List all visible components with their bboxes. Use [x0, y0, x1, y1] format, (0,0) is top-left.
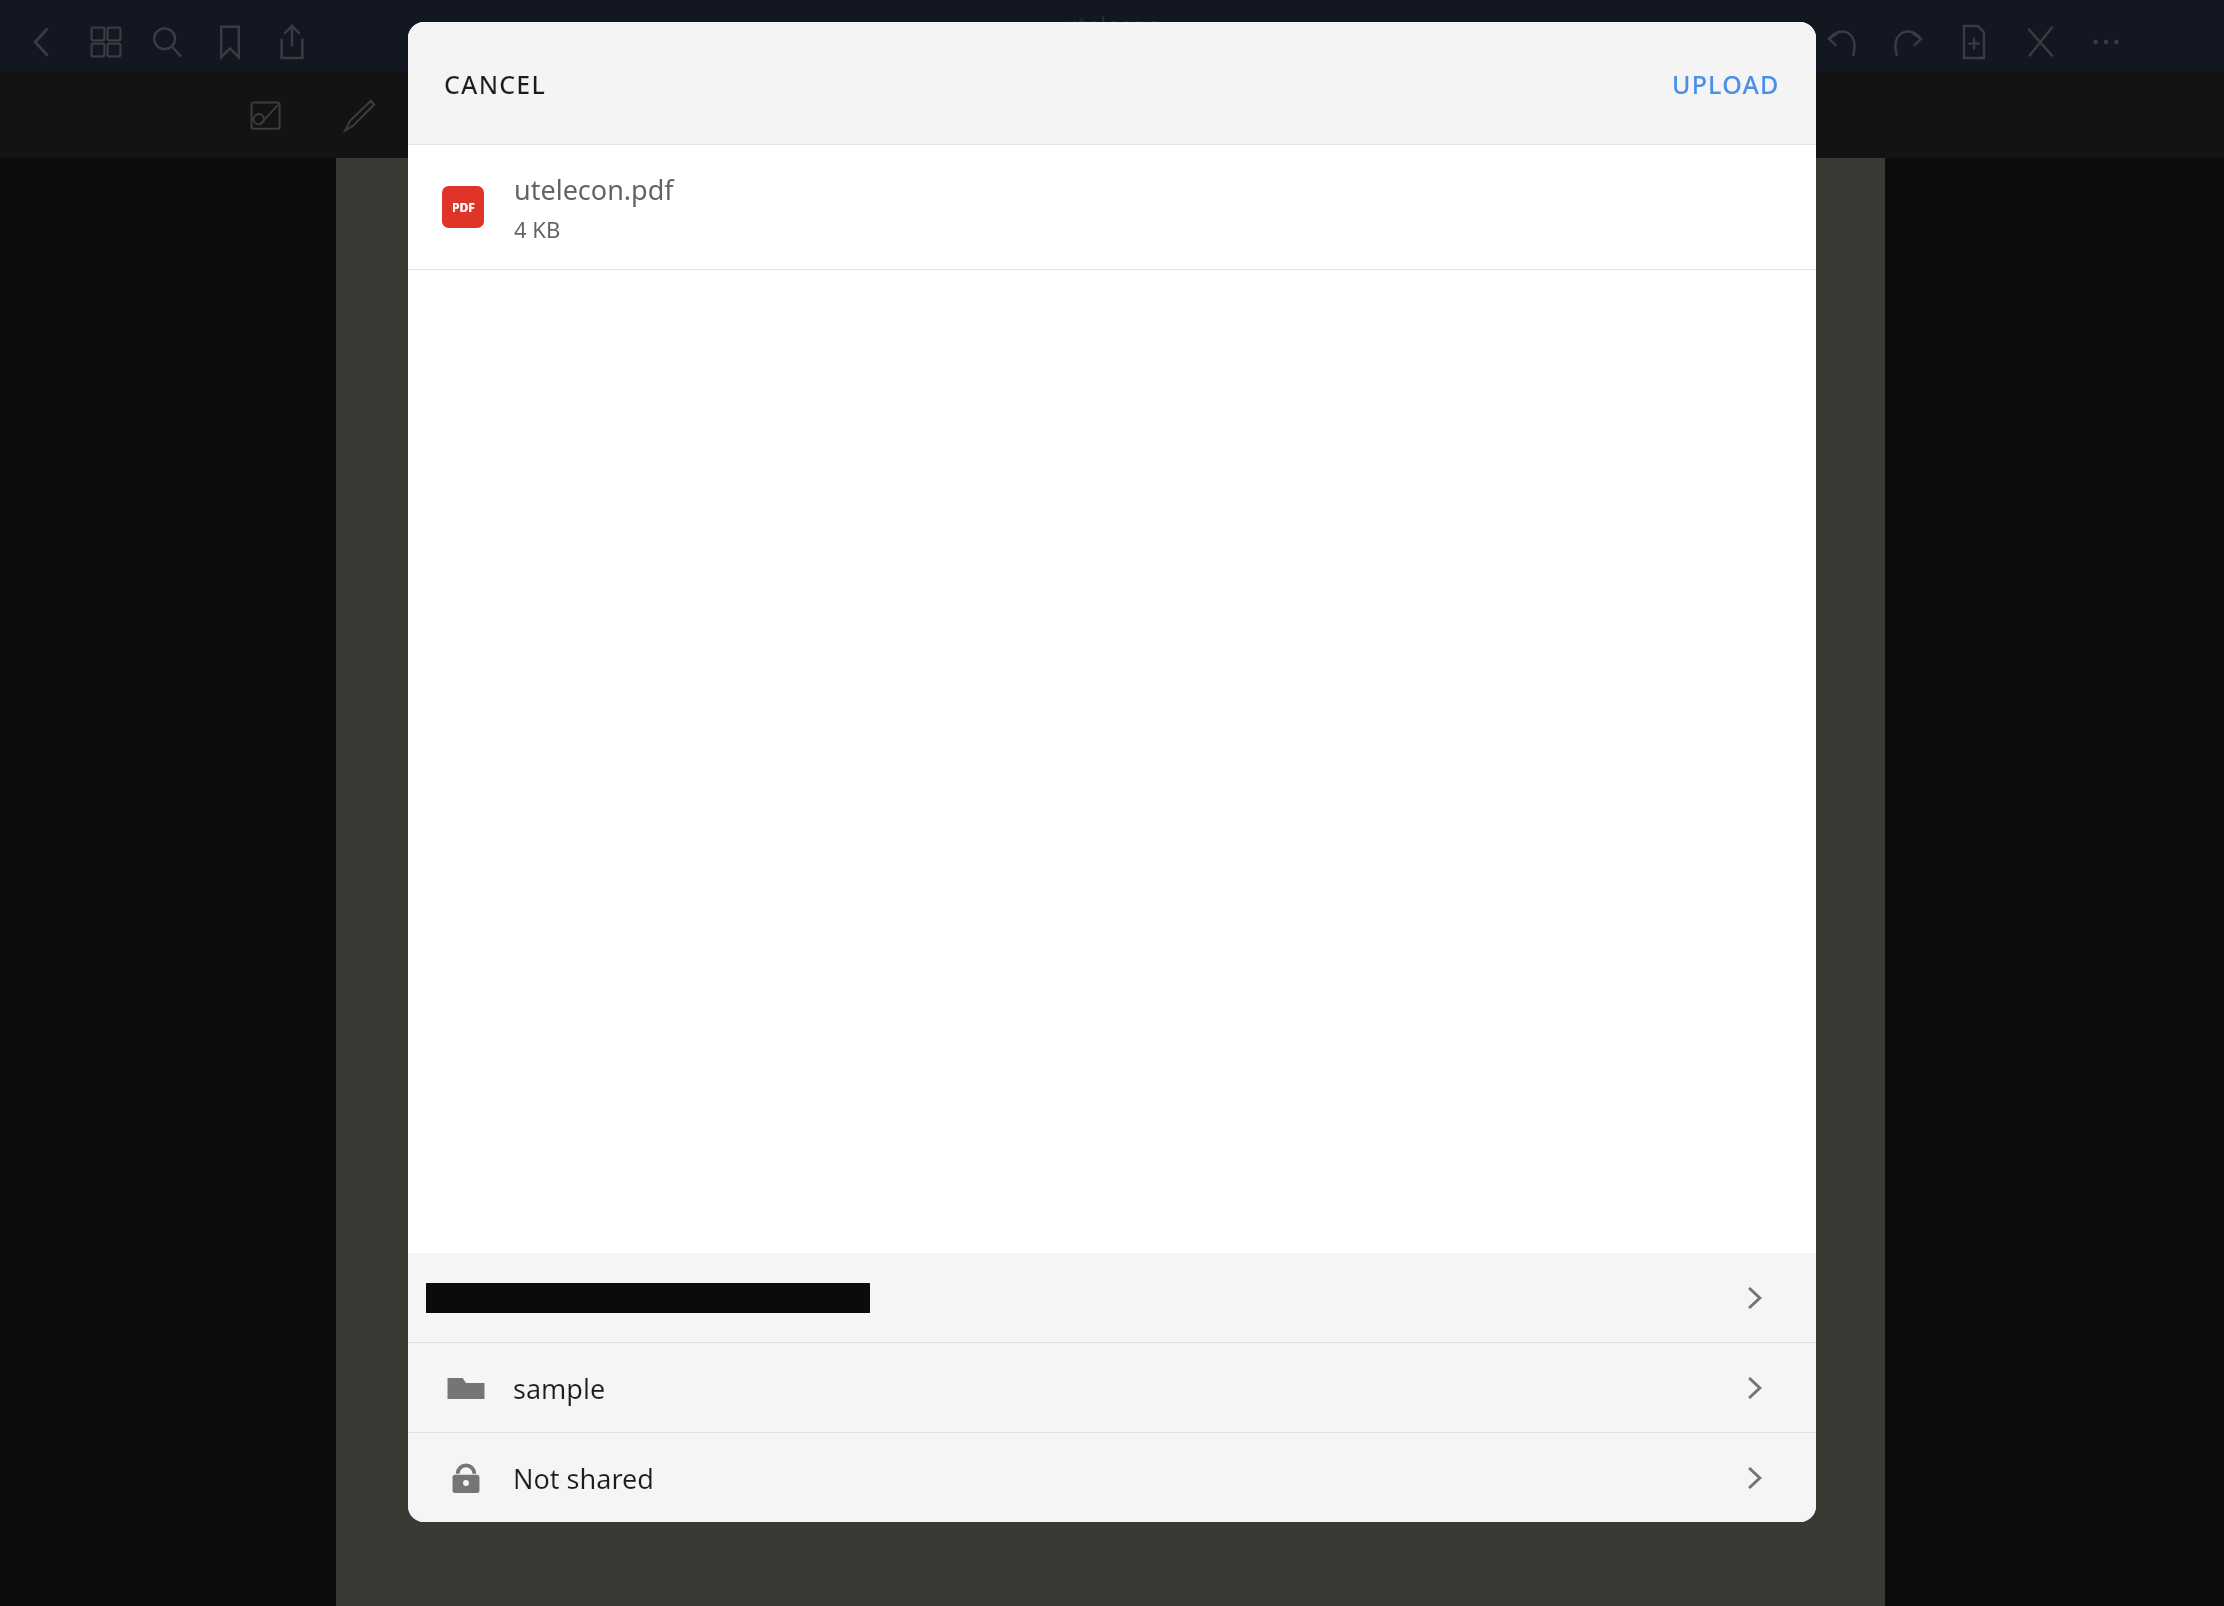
button[interactable]: Redo: [1880, 14, 1936, 70]
button[interactable]: Pen: [330, 88, 386, 144]
staticText: sample: [513, 1370, 606, 1407]
button[interactable]: Not shared: [408, 1433, 1816, 1522]
staticText: CANCEL: [444, 67, 547, 101]
button[interactable]: UPLOAD: [1652, 53, 1800, 115]
staticText: PDF: [452, 199, 475, 215]
button[interactable]: CANCEL: [424, 53, 567, 115]
button[interactable]: Erase: [2012, 14, 2068, 70]
button[interactable]: Thumbnails: [78, 14, 134, 70]
staticText: Not shared: [513, 1460, 654, 1497]
button[interactable]: PDF: [408, 145, 1816, 269]
button[interactable]: Back: [14, 14, 70, 70]
button[interactable]: More: [2078, 14, 2134, 70]
staticText: UPLOAD: [1672, 67, 1780, 101]
button[interactable]: sample: [408, 1343, 1816, 1432]
staticText: utelecon: [0, 8, 2224, 41]
button[interactable]: Bookmark: [202, 14, 258, 70]
button[interactable]: Add page: [1946, 14, 2002, 70]
button[interactable]: Share: [264, 14, 320, 70]
button[interactable]: Search: [139, 14, 195, 70]
button[interactable]: Account: [408, 1253, 1816, 1342]
button[interactable]: Text: [238, 88, 294, 144]
button[interactable]: Undo: [1814, 14, 1870, 70]
staticText: utelecon.pdf: [514, 171, 674, 208]
staticText: 4 KB: [514, 214, 561, 244]
